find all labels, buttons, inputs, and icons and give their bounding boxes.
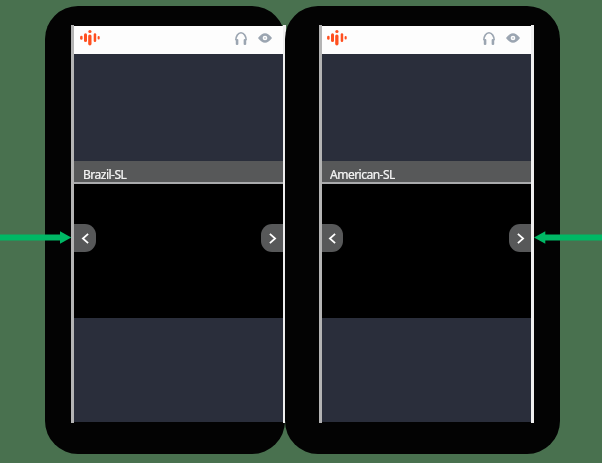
button[interactable]: Next xyxy=(261,224,283,252)
button[interactable]: American-SL xyxy=(321,161,531,182)
button[interactable]: Previous xyxy=(321,224,343,252)
button[interactable]: Preview xyxy=(254,27,276,49)
button[interactable]: Previous xyxy=(74,224,96,252)
button[interactable]: Next xyxy=(509,224,531,252)
button[interactable]: Listen xyxy=(478,27,500,49)
button[interactable]: Listen xyxy=(230,27,252,49)
button[interactable]: Brazil-SL xyxy=(74,161,283,182)
staticText: Brazil-SL xyxy=(83,166,127,182)
button[interactable]: Preview xyxy=(502,27,524,49)
staticText: American-SL xyxy=(330,166,395,182)
